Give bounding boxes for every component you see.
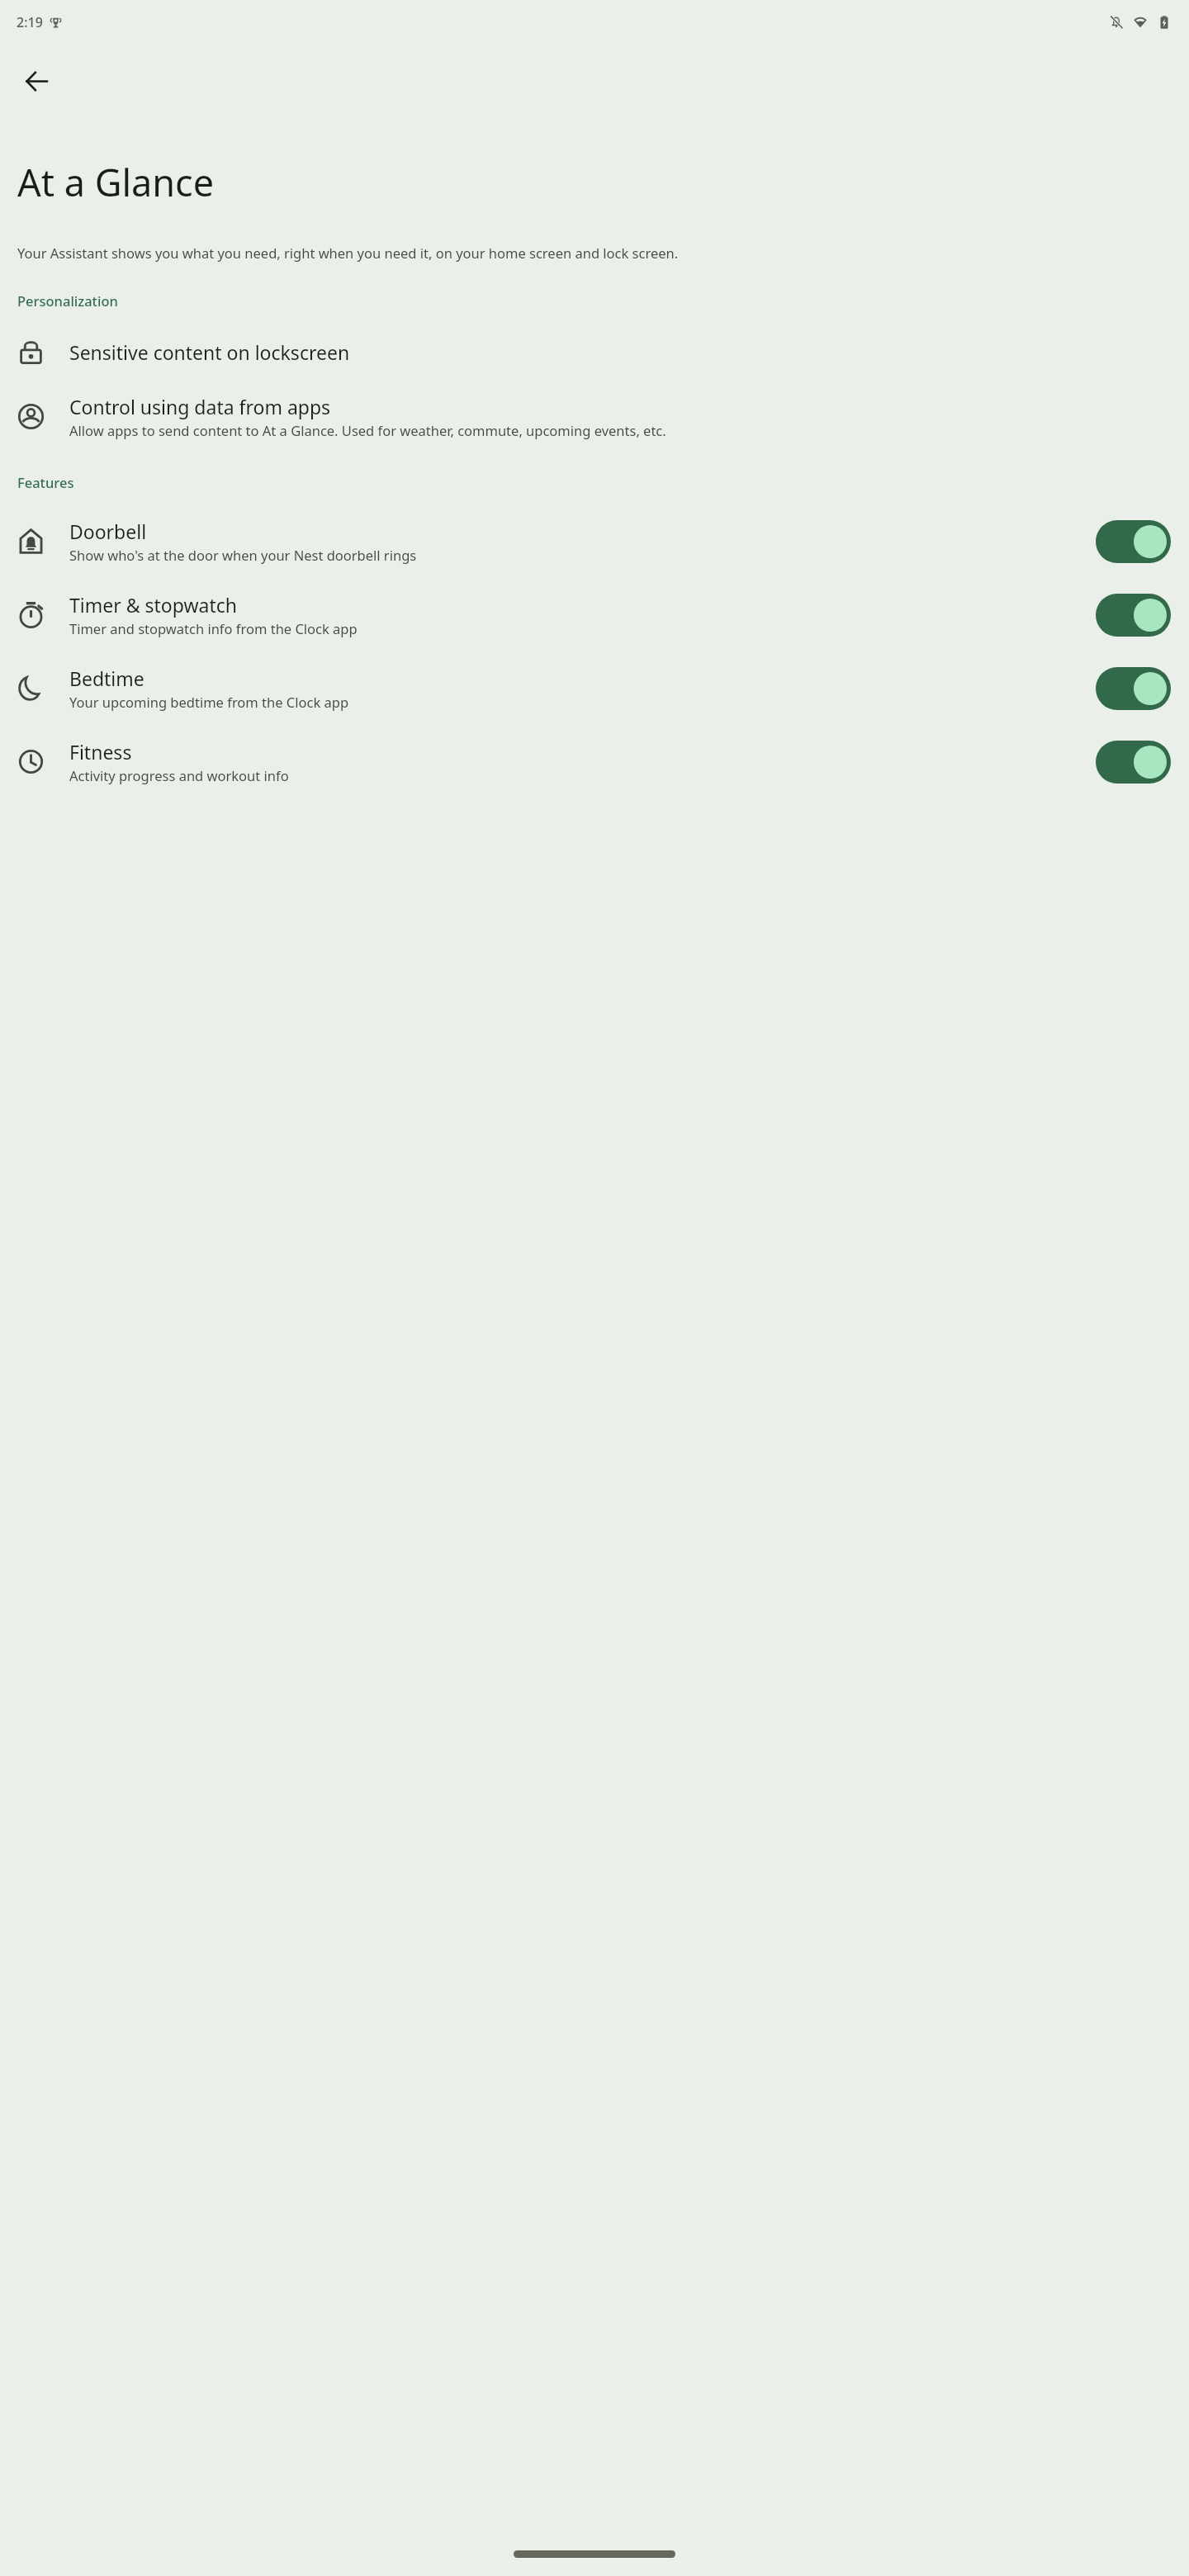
button[interactable]: Timer & stopwatch <box>0 578 1189 651</box>
staticText: 2:19 <box>17 13 43 31</box>
staticText: Your upcoming bedtime from the Clock app <box>69 693 349 711</box>
button[interactable]: Toggle <box>1096 520 1171 563</box>
staticText: Timer & stopwatch <box>69 592 237 618</box>
button[interactable]: Toggle <box>1096 667 1171 710</box>
button[interactable]: Bedtime <box>0 651 1189 725</box>
staticText: Doorbell <box>69 519 147 544</box>
button[interactable]: Toggle <box>1096 594 1171 637</box>
staticText: Control using data from apps <box>69 394 331 419</box>
staticText: Personalization <box>17 291 118 310</box>
button[interactable]: Sensitive content on lockscreen <box>0 324 1189 380</box>
button[interactable]: Toggle <box>1096 741 1171 784</box>
button[interactable]: Doorbell <box>0 504 1189 578</box>
staticText: Allow apps to send content to At a Glanc… <box>69 421 666 439</box>
button[interactable]: Back <box>7 51 66 111</box>
staticText: Sensitive content on lockscreen <box>69 339 350 365</box>
button[interactable]: Control using data from apps <box>0 380 1189 453</box>
staticText: Your Assistant shows you what you need, … <box>17 244 679 262</box>
staticText: Fitness <box>69 739 132 765</box>
button[interactable]: Fitness <box>0 725 1189 798</box>
staticText: Show who's at the door when your Nest do… <box>69 546 417 564</box>
staticText: Activity progress and workout info <box>69 766 289 784</box>
staticText: Timer and stopwatch info from the Clock … <box>69 619 358 637</box>
staticText: Features <box>17 473 74 491</box>
staticText: At a Glance <box>17 157 215 207</box>
staticText: Bedtime <box>69 665 144 691</box>
